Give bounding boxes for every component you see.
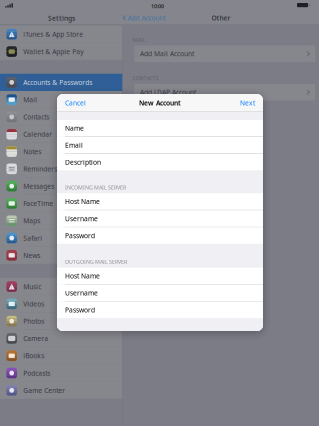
button[interactable]: Mail <box>0 91 122 108</box>
staticText: iBooks <box>23 351 44 360</box>
staticText: Password <box>65 231 95 240</box>
staticText: Contacts <box>23 112 49 121</box>
staticText: MAIL <box>133 36 146 43</box>
staticText: Wallet & Apple Pay <box>23 47 83 56</box>
staticText: Host Name <box>65 197 100 206</box>
staticText: Reminders <box>23 164 57 173</box>
button[interactable]: Host Name <box>57 268 263 284</box>
button[interactable]: Contacts <box>0 108 122 126</box>
staticText: Other <box>211 13 230 22</box>
button[interactable]: Photos <box>0 312 122 330</box>
button[interactable]: Maps <box>0 212 122 229</box>
staticText: Calendar <box>23 130 52 139</box>
staticText: Game Center <box>23 386 65 395</box>
button[interactable]: Add LDAP Account <box>134 84 315 101</box>
button[interactable]: Camera <box>0 330 122 347</box>
button[interactable]: Add Account <box>123 11 167 24</box>
staticText: Photos <box>23 317 44 326</box>
button[interactable]: Music <box>0 278 122 295</box>
button[interactable]: Password <box>57 302 263 318</box>
staticText: Videos <box>23 299 44 308</box>
button[interactable]: Safari <box>0 229 122 247</box>
button[interactable]: Cancel <box>62 95 89 111</box>
staticText: INCOMING MAIL SERVER <box>65 184 126 191</box>
button[interactable]: Name <box>57 120 263 136</box>
button[interactable]: Host Name <box>57 193 263 210</box>
staticText: Name <box>65 124 84 133</box>
staticText: Mail <box>23 95 37 104</box>
button[interactable]: Description <box>57 154 263 171</box>
button[interactable]: Username <box>57 285 263 301</box>
staticText: Username <box>65 288 98 297</box>
button[interactable]: Add Mail Account <box>134 45 315 62</box>
button[interactable]: Videos <box>0 295 122 312</box>
button[interactable]: Email <box>57 137 263 153</box>
staticText: Add Account <box>127 13 165 22</box>
button[interactable]: iTunes & App Store <box>0 26 122 43</box>
staticText: Camera <box>23 334 48 343</box>
staticText: Messages <box>23 182 54 191</box>
button[interactable]: Game Center <box>0 382 122 399</box>
staticText: Add Mail Account <box>140 49 194 58</box>
staticText: OUTGOING MAIL SERVER <box>65 258 127 265</box>
button[interactable]: Next <box>237 95 258 111</box>
staticText: Email <box>65 141 83 150</box>
staticText: Music <box>23 282 41 291</box>
button[interactable]: Podcasts <box>0 364 122 382</box>
staticText: News <box>23 251 40 260</box>
staticText: Cancel <box>65 98 86 107</box>
staticText: Add LDAP Account <box>140 88 196 97</box>
staticText: Next <box>240 98 255 107</box>
staticText: Username <box>65 214 98 223</box>
button[interactable]: Reminders <box>0 160 122 177</box>
staticText: Host Name <box>65 271 100 280</box>
button[interactable]: FaceTime <box>0 195 122 212</box>
staticText: Description <box>65 158 101 167</box>
staticText: 10:00 <box>151 3 164 10</box>
staticText: iTunes & App Store <box>23 30 83 39</box>
staticText: Notes <box>23 147 41 156</box>
button[interactable]: Notes <box>0 143 122 160</box>
button[interactable]: Messages <box>0 177 122 195</box>
staticText: Password <box>65 305 95 314</box>
button[interactable]: News <box>0 247 122 264</box>
button[interactable]: Password <box>57 227 263 244</box>
staticText: Maps <box>23 216 40 225</box>
staticText: CONTACTS <box>133 75 159 82</box>
staticText: FaceTime <box>23 199 53 208</box>
staticText: Settings <box>48 14 75 23</box>
staticText: New Account <box>139 98 181 107</box>
button[interactable]: Calendar <box>0 126 122 143</box>
staticText: Podcasts <box>23 369 50 377</box>
button[interactable]: Wallet & Apple Pay <box>0 43 122 60</box>
staticText: Accounts & Passwords <box>23 78 92 87</box>
button[interactable]: Accounts & Passwords <box>0 74 122 91</box>
staticText: Safari <box>23 234 42 242</box>
button[interactable]: iBooks <box>0 347 122 364</box>
button[interactable]: Username <box>57 210 263 227</box>
